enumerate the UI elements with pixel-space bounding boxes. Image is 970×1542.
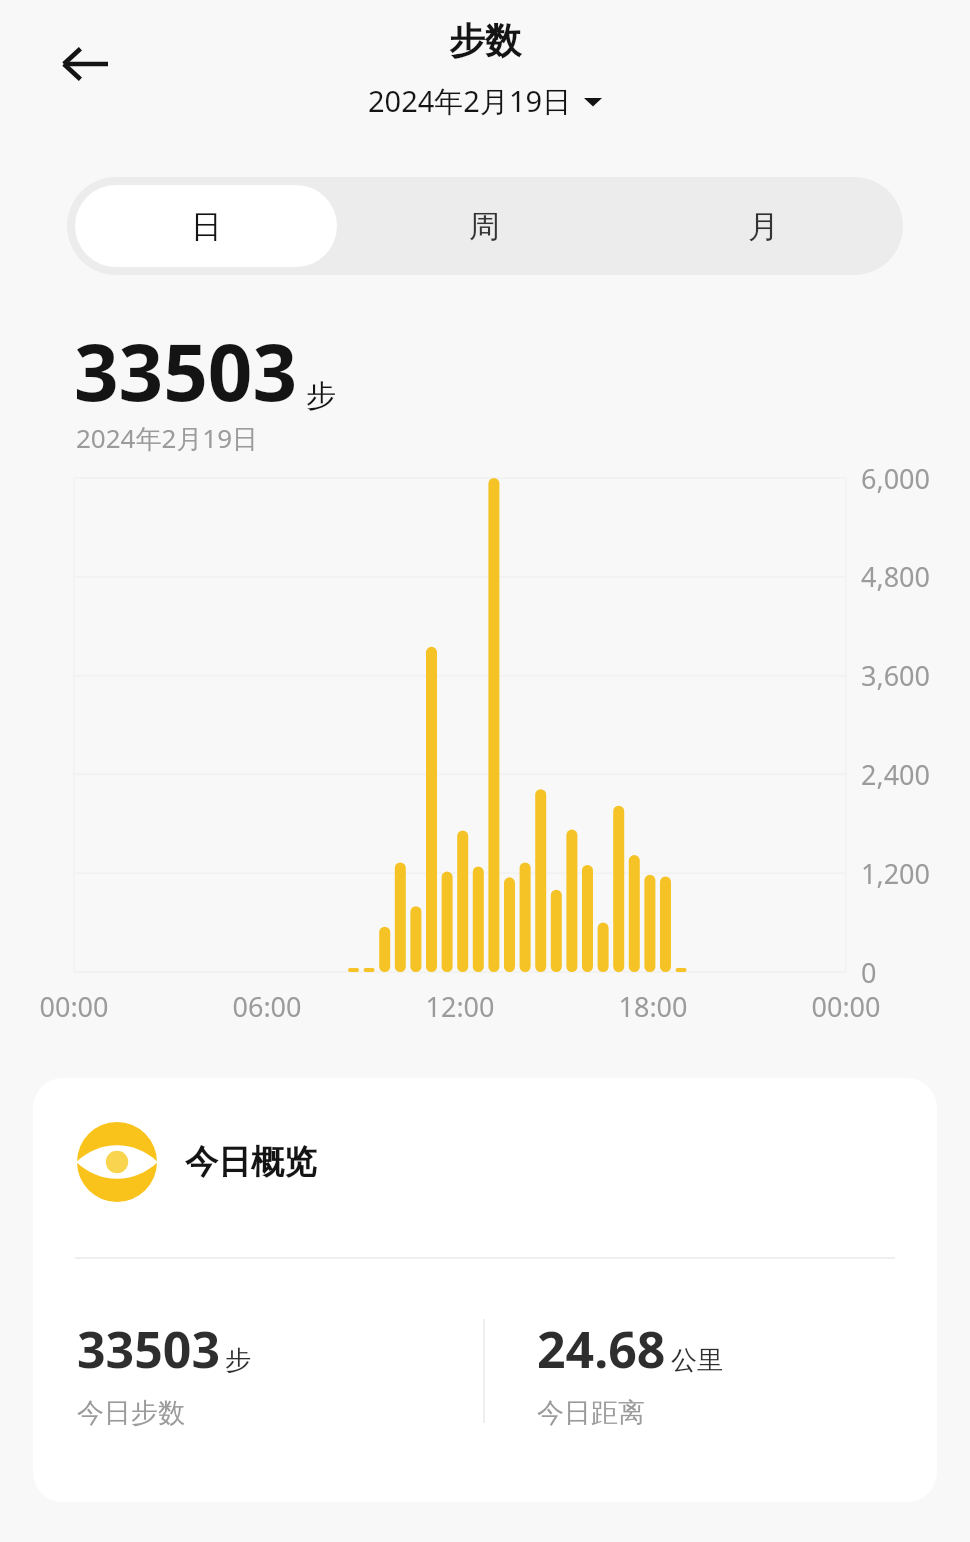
staticText: 06:00 (207, 988, 327, 1025)
staticText: 今日距离 (537, 1396, 645, 1430)
staticText: 1,200 (861, 855, 931, 892)
staticText: 33503 (77, 1315, 220, 1383)
staticText: 2024年2月19日 (76, 420, 259, 456)
staticText: 2024年2月19日 (368, 81, 572, 121)
button[interactable]: 月 (624, 177, 903, 275)
staticText: 月 (748, 207, 779, 246)
staticText: 日 (191, 207, 222, 246)
staticText: 00:00 (14, 988, 134, 1025)
button[interactable]: Back (47, 26, 123, 102)
staticText: 步数 (449, 18, 521, 63)
staticText: 00:00 (786, 988, 906, 1025)
staticText: 2,400 (861, 756, 931, 793)
button[interactable]: 日 (75, 185, 337, 267)
staticText: 3,600 (861, 657, 931, 694)
staticText: 24.68 (537, 1315, 666, 1383)
staticText: 今日概览 (185, 1141, 317, 1183)
staticText: 公里 (671, 1344, 723, 1377)
staticText: 步 (306, 377, 336, 415)
staticText: 33503 (74, 318, 298, 424)
button[interactable]: 2024年2月19日 (358, 77, 612, 125)
button[interactable]: 今日概览 (33, 1078, 937, 1502)
staticText: 步 (225, 1344, 251, 1377)
staticText: 周 (469, 207, 500, 246)
staticText: 今日步数 (77, 1396, 185, 1430)
button[interactable]: 周 (345, 177, 624, 275)
staticText: 18:00 (593, 988, 713, 1025)
staticText: 0 (861, 954, 877, 991)
staticText: 12:00 (400, 988, 520, 1025)
staticText: 6,000 (861, 460, 931, 497)
staticText: 4,800 (861, 558, 931, 595)
